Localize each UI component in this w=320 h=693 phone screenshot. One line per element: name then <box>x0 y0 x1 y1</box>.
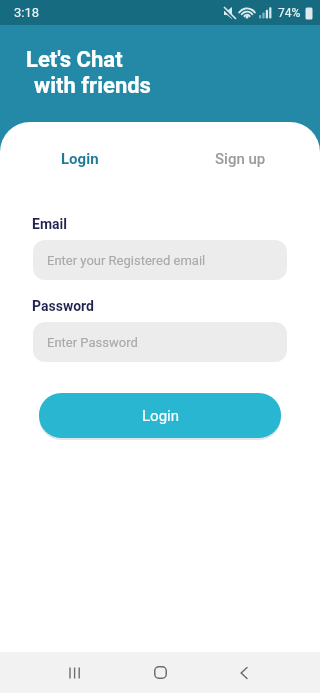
button[interactable] <box>224 652 264 693</box>
staticText: with friends <box>34 73 151 99</box>
staticText: Sign up <box>215 150 266 168</box>
button[interactable]: Enter your Registered email <box>33 240 287 280</box>
button[interactable]: Login <box>0 150 160 168</box>
button[interactable]: Sign up <box>160 150 320 168</box>
staticText: Login <box>142 407 179 425</box>
staticText: Email <box>32 216 67 232</box>
staticText: Login <box>61 150 99 168</box>
staticText: 3:18 <box>14 5 40 20</box>
button[interactable] <box>55 652 95 693</box>
staticText: Let's Chat <box>26 47 123 73</box>
staticText: Password <box>32 298 94 314</box>
staticText: 74% <box>278 6 301 20</box>
button[interactable] <box>140 652 180 693</box>
staticText: Enter Password <box>47 335 138 350</box>
staticText: Enter your Registered email <box>47 253 206 268</box>
button[interactable]: Login <box>39 393 281 438</box>
button[interactable]: Enter Password <box>33 322 287 362</box>
